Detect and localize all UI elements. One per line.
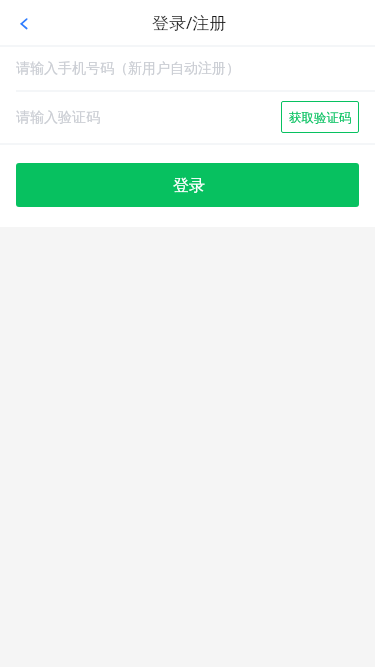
button[interactable]: Back <box>0 0 45 45</box>
button[interactable]: 获取验证码 <box>281 101 359 133</box>
staticText: 请输入手机号码（新用户自动注册） <box>16 60 240 78</box>
button[interactable]: 请输入验证码 <box>16 91 281 143</box>
staticText: 请输入验证码 <box>16 109 100 127</box>
staticText: 登录/注册 <box>152 11 227 34</box>
button[interactable]: 登录 <box>16 163 359 207</box>
button[interactable]: 请输入手机号码（新用户自动注册） <box>0 46 375 90</box>
staticText: 登录 <box>173 176 205 196</box>
staticText: 获取验证码 <box>289 110 352 126</box>
